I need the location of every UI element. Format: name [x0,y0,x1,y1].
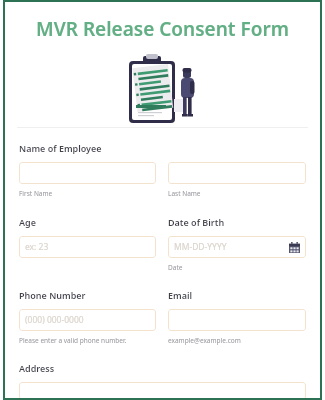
button[interactable] [19,162,156,184]
staticText: (000) 000-0000 [25,314,84,326]
staticText: Please enter a valid phone number. [19,336,127,345]
staticText: Email [168,289,193,301]
button[interactable] [168,162,306,184]
button[interactable]: MM-DD-YYYY [168,236,306,258]
button[interactable] [168,309,306,331]
staticText: MM-DD-YYYY [174,241,227,253]
button[interactable] [19,382,306,400]
staticText: Name of Employee [19,142,102,154]
staticText: Date of Birth [168,216,225,228]
staticText: Address [19,362,55,374]
staticText: MVR Release Consent Form [36,16,289,42]
staticText: Last Name [168,189,201,198]
staticText: First Name [19,189,53,198]
staticText: example@example.com [168,336,241,345]
button[interactable]: ex: 23 [19,236,156,258]
staticText: Date [168,263,183,272]
button[interactable]: (000) 000-0000 [19,309,156,331]
staticText: Age [19,216,36,228]
button[interactable]: Pick a date [289,242,300,253]
staticText: ex: 23 [25,241,49,253]
staticText: Phone Number [19,289,86,301]
